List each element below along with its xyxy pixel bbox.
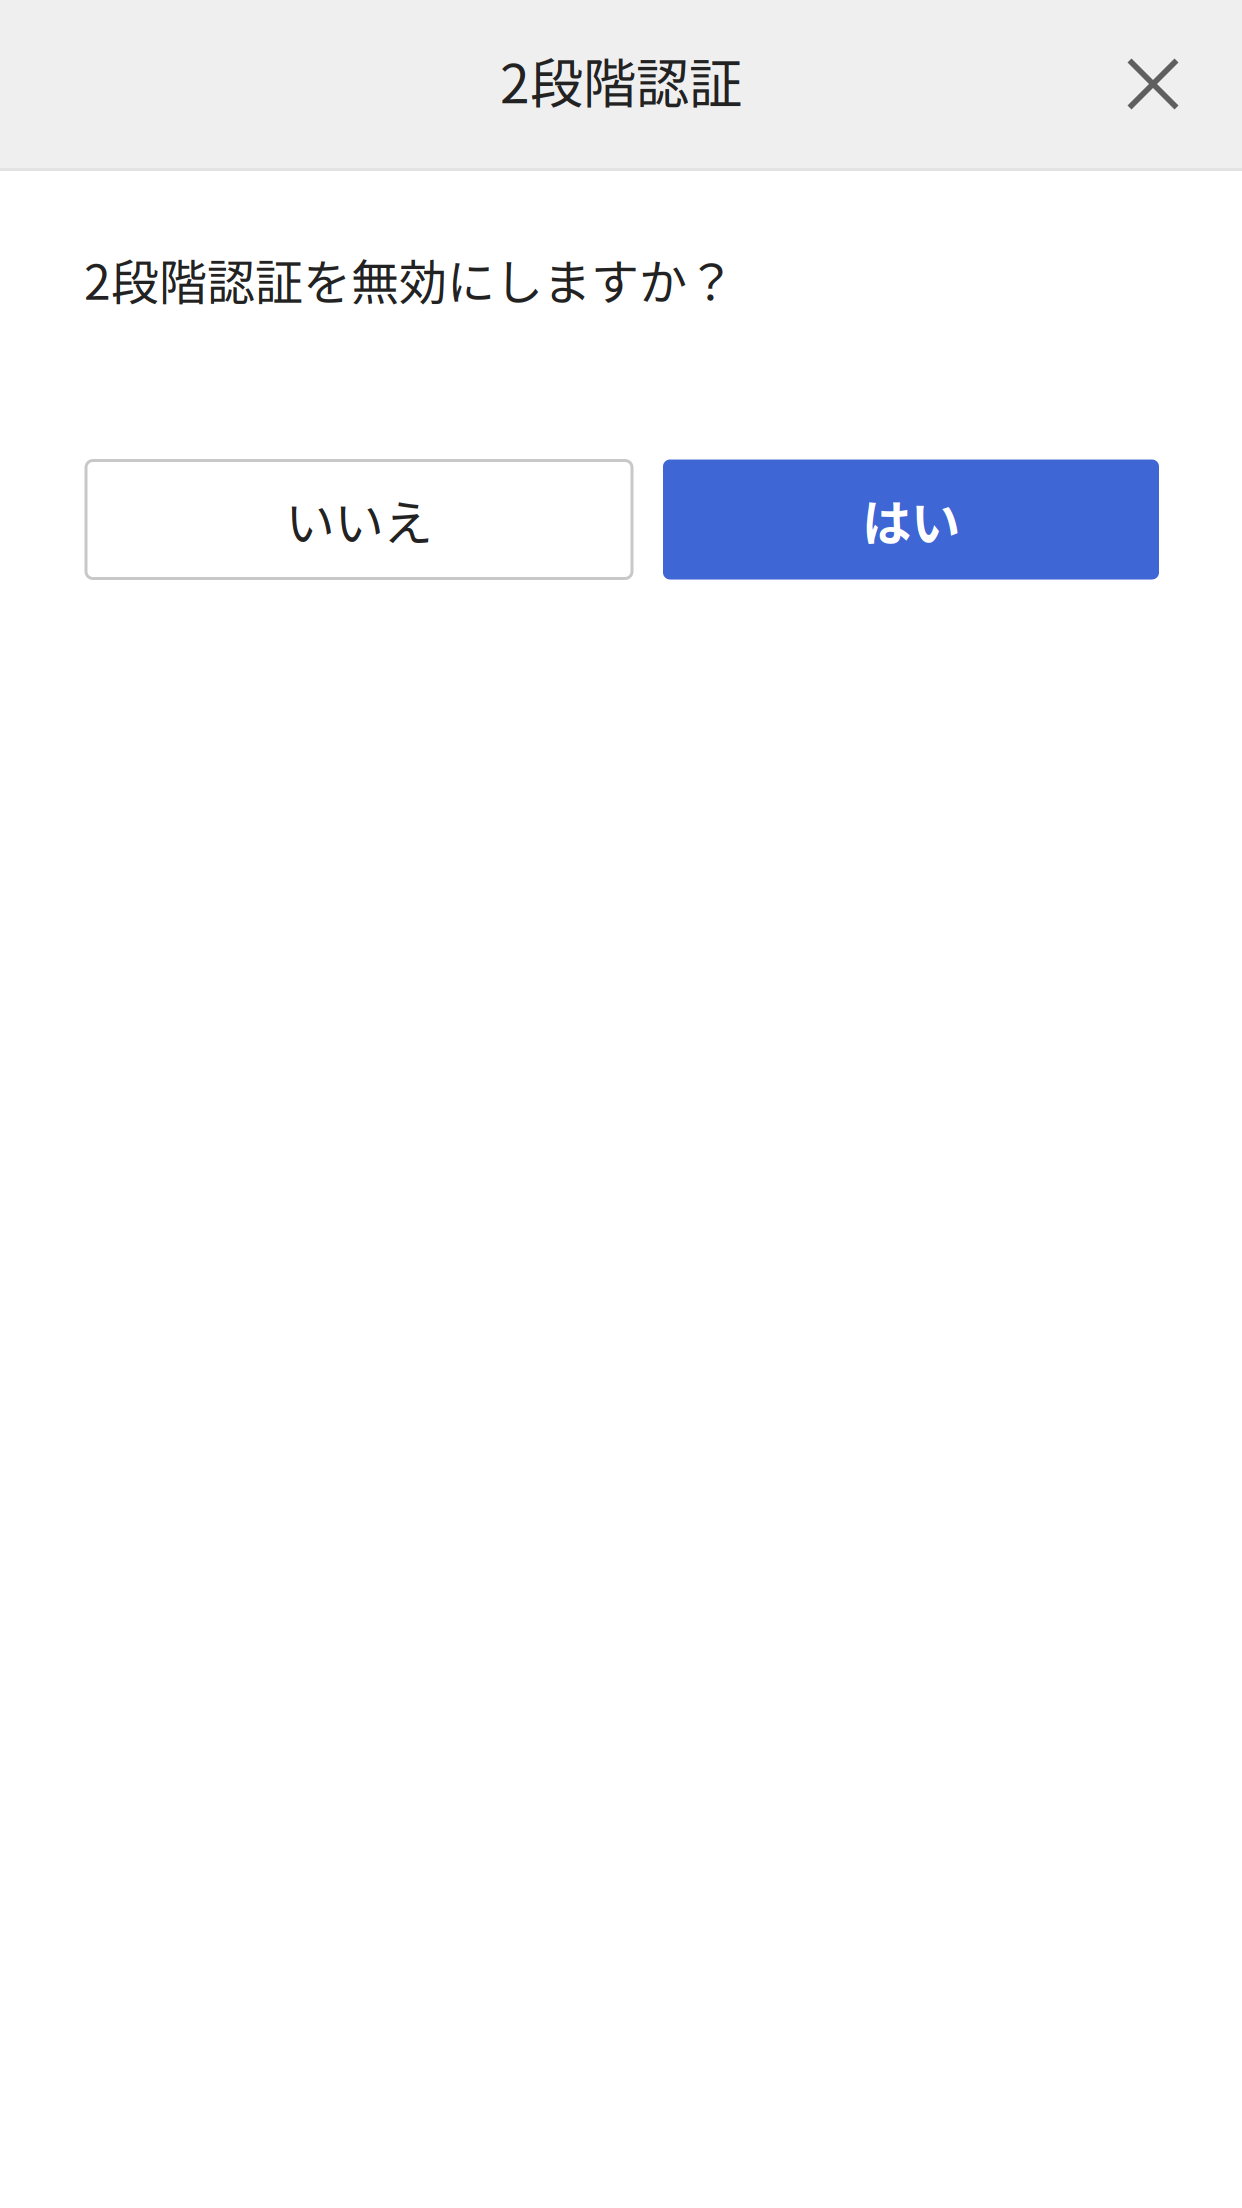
- staticText: はい: [862, 484, 960, 555]
- staticText: いいえ: [285, 484, 432, 555]
- staticText: 2段階認証: [500, 41, 742, 119]
- staticText: 2段階認証を無効にしますか？: [84, 244, 735, 313]
- button[interactable]: 閉じる: [1088, 19, 1218, 149]
- button[interactable]: いいえ: [86, 460, 632, 578]
- button[interactable]: はい: [663, 459, 1159, 579]
